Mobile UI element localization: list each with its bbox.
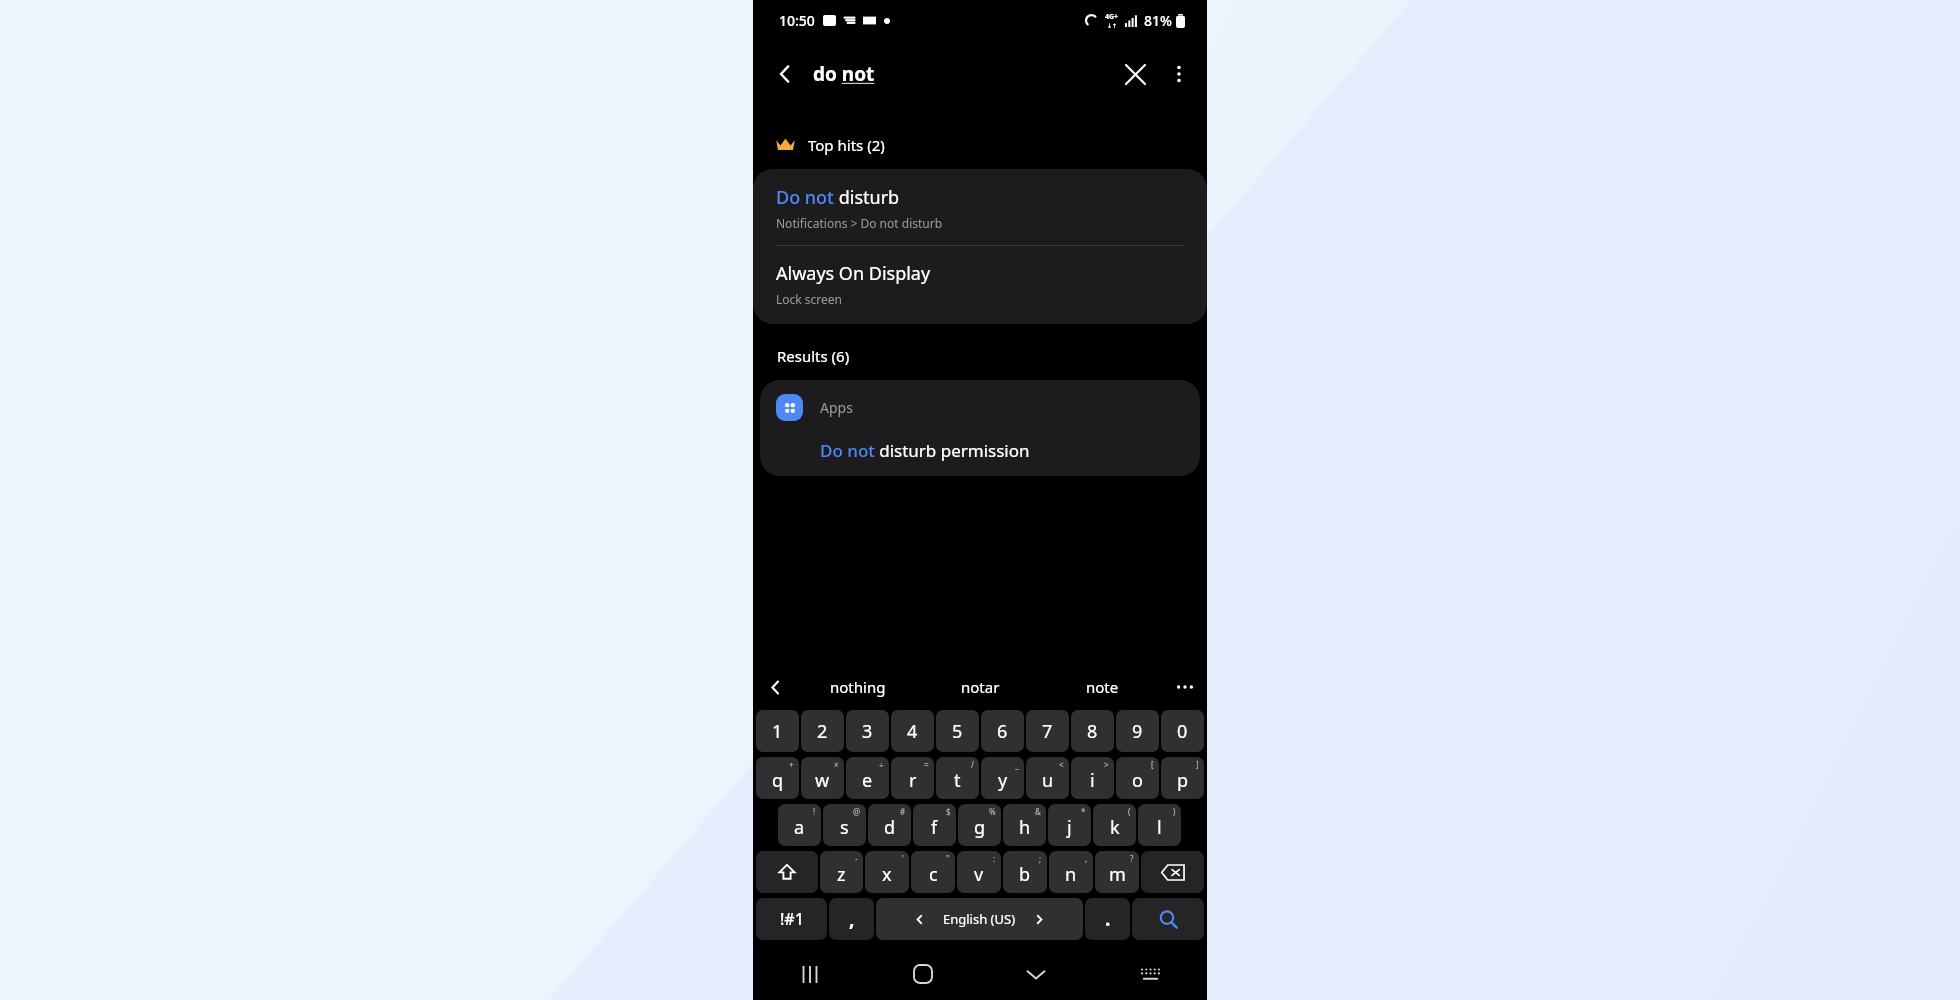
button[interactable]: 4 bbox=[891, 710, 934, 752]
staticText: > bbox=[1104, 759, 1109, 770]
staticText: x bbox=[882, 862, 892, 887]
button[interactable]: & bbox=[1003, 804, 1046, 846]
staticText: t bbox=[954, 768, 961, 793]
button[interactable]: # bbox=[868, 804, 911, 846]
staticText: o bbox=[1132, 768, 1143, 793]
staticText: 10:50 bbox=[779, 11, 815, 30]
button[interactable]: Home bbox=[866, 948, 979, 1000]
button[interactable]: ? bbox=[1095, 851, 1139, 893]
button[interactable]: , bbox=[829, 898, 874, 940]
staticText: ) bbox=[1173, 806, 1176, 817]
button[interactable]: ] bbox=[1161, 757, 1204, 799]
button[interactable]: " bbox=[911, 851, 955, 893]
button[interactable]: 5 bbox=[936, 710, 979, 752]
button[interactable]: > bbox=[1071, 757, 1114, 799]
staticText: 4 bbox=[907, 719, 918, 744]
staticText: 1 bbox=[772, 719, 783, 744]
button[interactable]: @ bbox=[823, 804, 866, 846]
staticText: s bbox=[840, 815, 849, 840]
button[interactable]: [ bbox=[1116, 757, 1159, 799]
staticText: p bbox=[1177, 768, 1189, 793]
staticText: h bbox=[1019, 815, 1031, 840]
staticText: nothing bbox=[830, 677, 886, 697]
staticText: 3 bbox=[862, 719, 873, 744]
staticText: i bbox=[1090, 768, 1095, 793]
staticText: " bbox=[946, 853, 950, 864]
button[interactable]: Do not disturb bbox=[753, 169, 1207, 245]
staticText: u bbox=[1042, 768, 1054, 793]
button[interactable]: / bbox=[936, 757, 979, 799]
staticText: q bbox=[772, 768, 784, 793]
staticText: 2 bbox=[817, 719, 828, 744]
button[interactable]: Hide keyboard bbox=[979, 948, 1093, 1000]
button[interactable]: Space, English (US) bbox=[876, 898, 1083, 940]
staticText: _ bbox=[1015, 759, 1019, 770]
button[interactable]: Back bbox=[763, 52, 807, 96]
staticText: × bbox=[834, 759, 839, 770]
button[interactable]: + bbox=[756, 757, 799, 799]
button[interactable]: < bbox=[1026, 757, 1069, 799]
button[interactable]: % bbox=[958, 804, 1001, 846]
staticText: Notifications > Do not disturb bbox=[776, 215, 943, 231]
button[interactable]: ' bbox=[865, 851, 909, 893]
button[interactable]: Previous suggestions bbox=[753, 664, 797, 710]
staticText: 0 bbox=[1177, 719, 1188, 744]
button[interactable]: . bbox=[1085, 898, 1130, 940]
staticText: a bbox=[794, 815, 805, 840]
button[interactable]: Search bbox=[1132, 898, 1204, 940]
button[interactable]: Apps bbox=[760, 380, 1200, 429]
button[interactable]: Clear search bbox=[1113, 52, 1157, 96]
staticText: ' bbox=[902, 853, 904, 864]
button[interactable]: More suggestions bbox=[1163, 664, 1207, 710]
staticText: c bbox=[929, 862, 938, 887]
button[interactable]: $ bbox=[913, 804, 956, 846]
staticText: = bbox=[924, 759, 929, 770]
button[interactable]: 0 bbox=[1161, 710, 1204, 752]
button[interactable]: 1 bbox=[756, 710, 799, 752]
button[interactable]: 2 bbox=[801, 710, 844, 752]
button[interactable]: notar bbox=[919, 664, 1041, 710]
staticText: v bbox=[974, 862, 984, 887]
staticText: do not bbox=[813, 61, 875, 87]
staticText: Do not disturb bbox=[776, 185, 900, 210]
button[interactable]: _ bbox=[981, 757, 1024, 799]
staticText: Lock screen bbox=[776, 291, 843, 307]
staticText: Do not disturb permission bbox=[820, 439, 1030, 462]
staticText: d bbox=[884, 815, 896, 840]
staticText: % bbox=[989, 806, 996, 817]
button[interactable]: Change keyboard bbox=[1093, 948, 1207, 1000]
button[interactable]: × bbox=[801, 757, 844, 799]
button[interactable]: 9 bbox=[1116, 710, 1159, 752]
button[interactable]: Shift bbox=[756, 851, 818, 893]
button[interactable]: = bbox=[891, 757, 934, 799]
button[interactable]: ÷ bbox=[846, 757, 889, 799]
button[interactable]: ) bbox=[1138, 804, 1181, 846]
button[interactable]: : bbox=[957, 851, 1001, 893]
button[interactable]: * bbox=[1048, 804, 1091, 846]
button[interactable]: 7 bbox=[1026, 710, 1069, 752]
button[interactable]: ; bbox=[1003, 851, 1047, 893]
staticText: : bbox=[993, 853, 996, 864]
button[interactable]: Recent apps bbox=[753, 948, 866, 1000]
button[interactable]: More options bbox=[1157, 52, 1201, 96]
button[interactable]: ! bbox=[778, 804, 821, 846]
button[interactable]: Always On Display bbox=[753, 246, 1207, 324]
staticText: w bbox=[815, 768, 830, 793]
staticText: z bbox=[837, 862, 846, 887]
button[interactable]: , bbox=[1049, 851, 1093, 893]
button[interactable]: ( bbox=[1093, 804, 1136, 846]
button[interactable]: Do not disturb permission bbox=[760, 429, 1200, 476]
button[interactable]: do not bbox=[813, 61, 875, 87]
staticText: b bbox=[1019, 862, 1031, 887]
button[interactable]: note bbox=[1041, 664, 1163, 710]
button[interactable]: nothing bbox=[797, 664, 919, 710]
button[interactable]: - bbox=[820, 851, 863, 893]
staticText: ↓↑ bbox=[1107, 22, 1118, 29]
button[interactable]: 3 bbox=[846, 710, 889, 752]
button[interactable]: !#1 bbox=[756, 898, 827, 940]
button[interactable]: 6 bbox=[981, 710, 1024, 752]
button[interactable]: Backspace bbox=[1141, 851, 1204, 893]
button[interactable]: 8 bbox=[1071, 710, 1114, 752]
staticText: e bbox=[862, 768, 873, 793]
staticText: [ bbox=[1151, 759, 1154, 770]
